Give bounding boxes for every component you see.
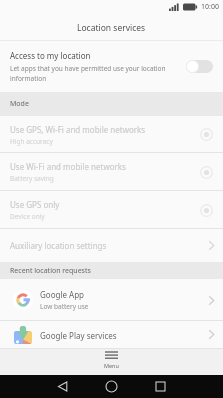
staticText: Access to my location [10,50,91,61]
staticText: information [10,74,47,83]
button[interactable] [155,381,166,392]
staticText: Menu [104,362,119,369]
staticText: Google App [40,289,85,300]
staticText: Google Play services [40,330,117,341]
staticText: 10:00 [201,2,219,12]
staticText: Let apps that you have permitted use you… [10,64,166,73]
button[interactable]: Auxiliary location settings [0,229,223,262]
button[interactable]: Use GPS, Wi-Fi and mobile networks [0,116,223,153]
button[interactable]: Access to my location [0,41,223,92]
staticText: Mode [10,99,29,109]
staticText: Use Wi-Fi and mobile networks [10,161,126,172]
button[interactable] [57,381,69,392]
button[interactable]: Google App [0,279,223,321]
button[interactable]: Use Wi-Fi and mobile networks [0,153,223,191]
staticText: Battery saving [10,174,54,183]
staticText: Auxiliary location settings [10,240,107,251]
staticText: Use GPS, Wi-Fi and mobile networks [10,124,146,135]
staticText: Location services [77,22,146,34]
staticText: Device only [10,212,45,221]
staticText: High accuracy [10,137,53,146]
staticText: Use GPS only [10,199,60,210]
button[interactable] [186,60,213,73]
button[interactable]: Google Play services [0,321,223,348]
staticText: Recent location requests [10,266,91,276]
button[interactable]: Menu [104,351,119,369]
staticText: Low battery use [40,302,89,311]
button[interactable]: Use GPS only [0,191,223,229]
button[interactable] [105,380,118,393]
